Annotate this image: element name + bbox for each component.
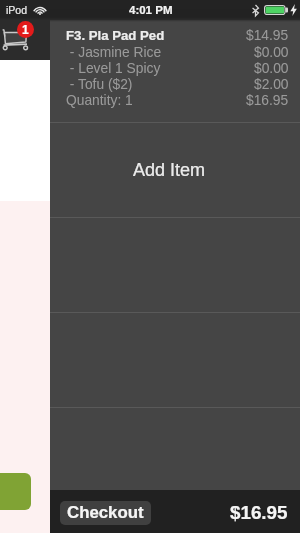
staticText: $2.00 bbox=[254, 77, 289, 92]
button[interactable]: Checkout bbox=[60, 501, 151, 525]
staticText: $16.95 bbox=[246, 93, 289, 108]
staticText: - Tofu ($2) bbox=[66, 77, 133, 92]
button[interactable]: Add Item bbox=[50, 123, 300, 217]
button[interactable]: Menu item bbox=[0, 473, 31, 510]
staticText: $0.00 bbox=[254, 45, 289, 60]
staticText: F3. Pla Pad Ped bbox=[66, 28, 165, 43]
staticText: 4:01 PM bbox=[129, 4, 173, 17]
staticText: 1 bbox=[22, 23, 29, 36]
staticText: $14.95 bbox=[246, 28, 289, 43]
staticText: Quantity: 1 bbox=[66, 93, 133, 108]
button[interactable]: Shopping cart, 1 item bbox=[0, 20, 50, 60]
staticText: iPod bbox=[6, 4, 28, 16]
staticText: $0.00 bbox=[254, 61, 289, 76]
staticText: $16.95 bbox=[230, 502, 288, 523]
staticText: Checkout bbox=[67, 503, 144, 522]
staticText: Add Item bbox=[133, 160, 206, 180]
staticText: - Jasmine Rice bbox=[66, 45, 162, 60]
button[interactable]: F3. Pla Pad Ped bbox=[50, 22, 300, 122]
staticText: - Level 1 Spicy bbox=[66, 61, 161, 76]
